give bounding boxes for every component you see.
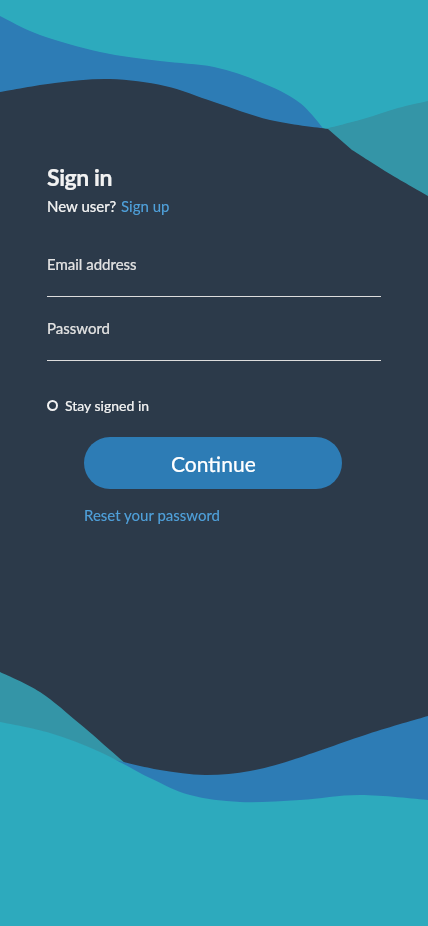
- button[interactable]: Continue: [84, 437, 342, 489]
- button[interactable]: Password: [47, 316, 381, 361]
- staticText: Password: [47, 319, 110, 337]
- staticText: Email address: [47, 255, 137, 273]
- button[interactable]: Reset your password: [84, 506, 221, 524]
- staticText: Continue: [171, 451, 256, 476]
- button[interactable]: Email address: [47, 252, 381, 297]
- button[interactable]: Stay signed in: [47, 397, 150, 414]
- button[interactable]: Sign up: [121, 197, 170, 215]
- staticText: Stay signed in: [65, 397, 150, 414]
- staticText: New user?: [47, 197, 121, 215]
- staticText: Sign in: [47, 163, 113, 191]
